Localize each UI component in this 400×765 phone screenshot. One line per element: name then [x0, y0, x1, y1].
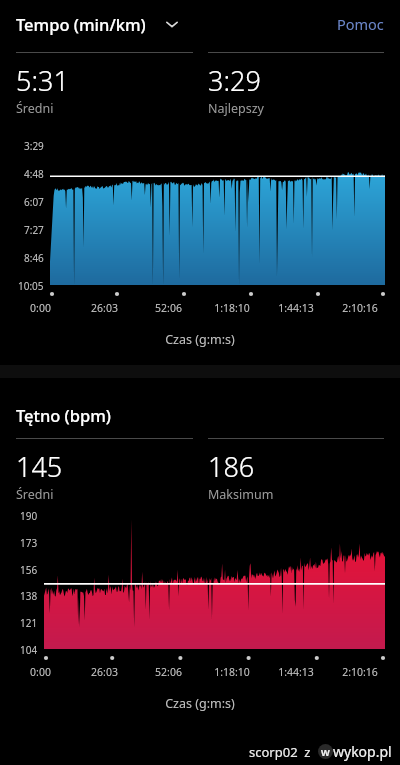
staticText: 0:00	[30, 301, 51, 315]
button[interactable]: 5:31	[16, 52, 193, 117]
staticText: Tempo (min/km)	[16, 13, 146, 35]
staticText: Średni	[16, 486, 54, 503]
staticText: 3:29	[208, 62, 261, 99]
staticText: W	[321, 746, 330, 758]
staticText: 1:18:10	[214, 665, 250, 679]
staticText: 8:46	[24, 251, 44, 265]
staticText: 26:03	[91, 665, 118, 679]
button[interactable]: 186	[208, 438, 384, 503]
staticText: Czas (g:m:s)	[0, 331, 400, 348]
staticText: 52:06	[155, 301, 182, 315]
staticText: 156	[20, 563, 38, 577]
staticText: 190	[20, 509, 38, 523]
staticText: 6:07	[24, 195, 44, 209]
button[interactable]: Tempo (min/km)	[16, 13, 184, 35]
staticText: scorp02 z	[249, 743, 318, 761]
staticText: Maksimum	[208, 486, 274, 503]
staticText: 5:31	[16, 62, 69, 99]
staticText: 52:06	[155, 665, 182, 679]
staticText: Tętno (bpm)	[16, 404, 111, 426]
staticText: 121	[20, 616, 38, 630]
staticText: 0:00	[30, 665, 51, 679]
staticText: 4:48	[24, 167, 44, 181]
staticText: 1:44:13	[278, 301, 314, 315]
staticText: 7:27	[24, 223, 44, 237]
staticText: Średni	[16, 100, 54, 117]
button[interactable]: Pomoc	[335, 12, 386, 36]
staticText: Najlepszy	[208, 100, 264, 117]
button[interactable]: 3:29	[208, 52, 384, 117]
staticText: 173	[20, 536, 38, 550]
staticText: 3:29	[24, 139, 44, 153]
staticText: 1:18:10	[214, 301, 250, 315]
button[interactable]: 145	[16, 438, 193, 503]
staticText: 10:05	[18, 279, 44, 293]
staticText: 26:03	[91, 301, 118, 315]
staticText: 2:10:16	[342, 665, 378, 679]
staticText: 104	[20, 643, 38, 657]
staticText: 186	[208, 448, 255, 485]
staticText: 138	[20, 589, 38, 603]
staticText: 1:44:13	[278, 665, 314, 679]
staticText: 2:10:16	[342, 301, 378, 315]
staticText: wykop.pl	[333, 742, 392, 761]
staticText: 145	[16, 448, 63, 485]
staticText: Czas (g:m:s)	[0, 695, 400, 712]
staticText: Pomoc	[337, 14, 384, 34]
